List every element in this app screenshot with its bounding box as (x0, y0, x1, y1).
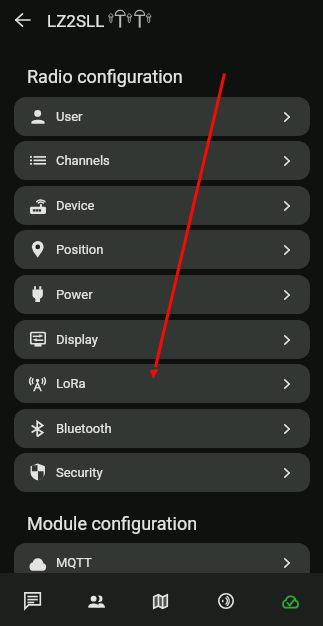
staticText: LoRa (56, 376, 86, 391)
button[interactable]: Power (14, 275, 310, 314)
button[interactable]: LoRa (14, 364, 310, 403)
button[interactable]: Messages (0, 573, 64, 626)
button[interactable]: MQTT (14, 543, 310, 582)
button[interactable]: Back (7, 4, 38, 35)
staticText: Device (56, 198, 95, 213)
staticText: Security (56, 465, 103, 480)
button[interactable]: Map (128, 573, 193, 626)
button[interactable]: Radio (193, 573, 258, 626)
button[interactable]: Security (14, 453, 310, 492)
button[interactable]: Device (14, 186, 310, 225)
button[interactable]: Bluetooth (14, 409, 310, 448)
button[interactable]: Position (14, 230, 310, 269)
staticText: Position (56, 242, 104, 257)
button[interactable]: Contacts (64, 573, 128, 626)
staticText: LZ2SLL (47, 11, 105, 31)
staticText: Channels (56, 153, 110, 168)
staticText: Bluetooth (56, 421, 112, 436)
staticText: MQTT (56, 555, 92, 570)
staticText: Module configuration (27, 513, 198, 534)
staticText: Radio configuration (27, 66, 183, 87)
button[interactable]: User (14, 97, 310, 136)
staticText: Power (56, 287, 93, 302)
button[interactable]: Connection (258, 573, 323, 626)
staticText: User (56, 109, 83, 124)
button[interactable]: Display (14, 320, 310, 359)
staticText: Display (56, 332, 98, 347)
button[interactable]: Channels (14, 141, 310, 180)
